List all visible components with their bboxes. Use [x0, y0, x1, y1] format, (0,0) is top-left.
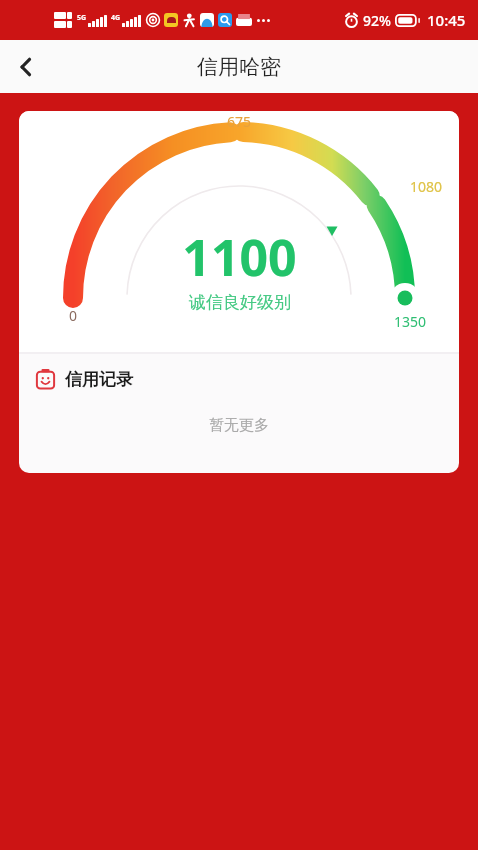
staticText: 675: [227, 112, 252, 131]
staticText: 4G: [111, 13, 121, 23]
staticText: 暂无更多: [209, 416, 269, 435]
staticText: 1350: [394, 312, 427, 331]
staticText: 信用记录: [65, 369, 133, 390]
staticText: 5G: [77, 13, 87, 23]
staticText: 1100: [182, 223, 297, 291]
staticText: 10:45: [427, 10, 466, 30]
staticText: 92%: [363, 11, 391, 30]
staticText: 0: [69, 306, 78, 325]
button[interactable]: Back: [4, 45, 48, 89]
staticText: 1080: [410, 177, 443, 196]
staticText: 信用哈密: [197, 54, 281, 80]
button[interactable]: 信用记录: [19, 354, 459, 404]
staticText: 诚信良好级别: [189, 292, 291, 313]
